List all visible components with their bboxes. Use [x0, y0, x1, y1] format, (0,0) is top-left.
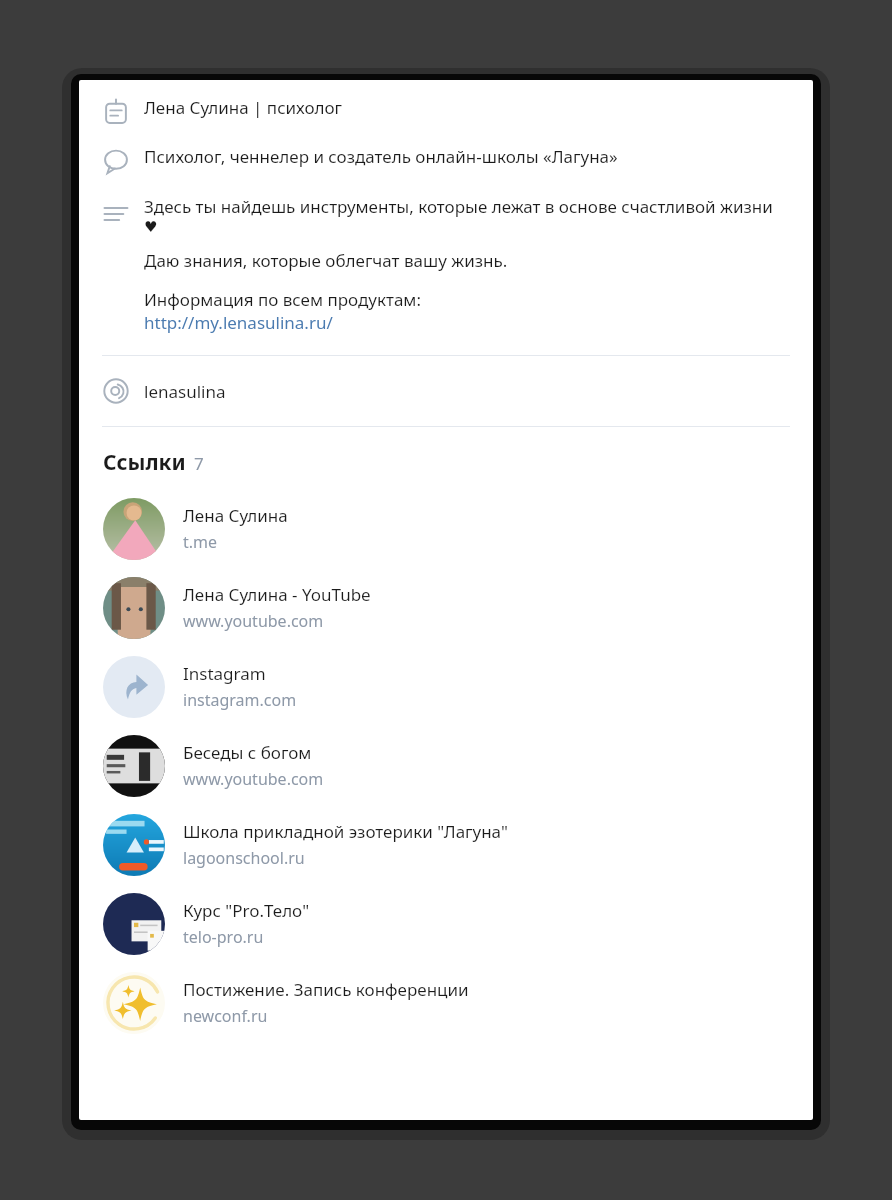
button[interactable]: Постижение. Запись конференции [79, 963, 813, 1042]
button[interactable]: Курс "Pro.Тело" [79, 884, 813, 963]
button[interactable]: http://my.lenasulina.ru/ [144, 311, 333, 334]
staticText: t.me [183, 531, 218, 553]
other: Status [103, 148, 129, 174]
staticText: Даю знания, которые облегчат вашу жизнь. [144, 249, 508, 272]
staticText: Информация по всем продуктам: [144, 288, 421, 311]
other: Description [103, 201, 129, 227]
staticText: Лена Сулина | психолог [144, 96, 343, 119]
staticText: Здесь ты найдешь инструменты, которые ле… [144, 195, 773, 218]
staticText: Instagram [183, 662, 266, 685]
staticText: Ссылки [103, 448, 186, 477]
staticText: Беседы с богом [183, 741, 312, 764]
button[interactable]: Лена Сулина [79, 489, 813, 568]
other: Username [103, 378, 129, 404]
staticText: newconf.ru [183, 1005, 268, 1027]
staticText: telo-pro.ru [183, 926, 264, 948]
button[interactable]: Беседы с богом [79, 726, 813, 805]
staticText: Психолог, ченнелер и создатель онлайн-шк… [144, 145, 618, 168]
staticText: Постижение. Запись конференции [183, 978, 469, 1001]
staticText: Школа прикладной эзотерики "Лагуна" [183, 820, 508, 843]
staticText: Лена Сулина - YouTube [183, 583, 371, 606]
staticText: lagoonschool.ru [183, 847, 305, 869]
staticText: Курс "Pro.Тело" [183, 899, 310, 922]
button[interactable]: Instagram [79, 647, 813, 726]
staticText: instagram.com [183, 689, 297, 711]
button[interactable]: Username [79, 376, 813, 406]
staticText: www.youtube.com [183, 768, 324, 790]
button[interactable]: Name [79, 96, 813, 127]
other: Name [103, 99, 129, 125]
staticText: Лена Сулина [183, 504, 288, 527]
staticText: 7 [194, 452, 204, 475]
staticText: ♥ [144, 218, 158, 235]
button[interactable]: Лена Сулина - YouTube [79, 568, 813, 647]
staticText: www.youtube.com [183, 610, 324, 632]
button[interactable]: Школа прикладной эзотерики "Лагуна" [79, 805, 813, 884]
staticText: lenasulina [144, 380, 226, 403]
